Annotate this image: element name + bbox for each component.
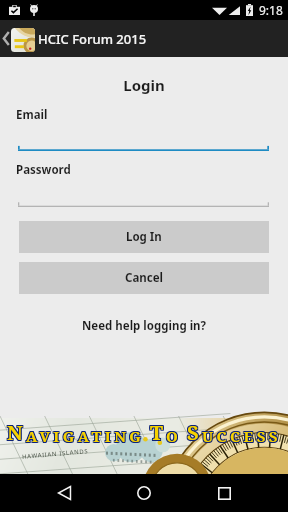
staticText: AVIGATING [26, 427, 145, 447]
staticText: UCCESS [202, 427, 281, 447]
staticText: AVIGATING [26, 425, 145, 445]
staticText: AVIGATING [27, 425, 146, 445]
staticText: AVIGATING [26, 426, 145, 446]
staticText: S [186, 418, 201, 445]
staticText: Login [0, 75, 288, 95]
staticText: N [6, 419, 25, 446]
button[interactable]: Navigate up [0, 20, 12, 57]
staticText: UCCESS [202, 425, 281, 445]
staticText: AVIGATING [27, 427, 146, 447]
staticText: T [150, 418, 166, 445]
staticText: UCCESS [201, 427, 280, 447]
staticText: UCCESS [203, 427, 282, 447]
button[interactable]: Recent apps [202, 474, 246, 512]
staticText: UCCESS [201, 426, 280, 446]
button[interactable]: Log In [19, 221, 269, 253]
button[interactable]: Back [42, 474, 86, 512]
staticText: O [165, 425, 181, 445]
staticText: O [167, 425, 183, 445]
staticText: UCCESS [203, 425, 282, 445]
staticText: N [8, 420, 27, 447]
staticText: O [166, 427, 182, 447]
staticText: Log In [126, 229, 162, 245]
staticText: T [151, 420, 167, 447]
staticText: T [151, 419, 167, 446]
button[interactable]: Cancel [19, 262, 269, 294]
staticText: Need help logging in? [82, 318, 207, 334]
button[interactable]: Need help logging in? [76, 315, 213, 337]
staticText: N [7, 420, 26, 447]
staticText: S [187, 420, 202, 447]
button[interactable]: Home [122, 474, 166, 512]
staticText: T [150, 419, 166, 446]
staticText: S [188, 419, 203, 446]
staticText: Password [16, 162, 71, 178]
staticText: Cancel [125, 270, 163, 286]
staticText: N [6, 420, 25, 447]
staticText: HCIC Forum 2015 [38, 30, 147, 48]
staticText: N [8, 419, 27, 446]
staticText: AVIGATING [25, 426, 144, 446]
staticText: N [7, 418, 26, 445]
staticText: O [166, 426, 182, 446]
staticText: AVIGATING [25, 425, 144, 445]
staticText: S [186, 419, 201, 446]
staticText: UCCESS [201, 425, 280, 445]
staticText: S [186, 420, 201, 447]
staticText: O [165, 427, 181, 447]
staticText: S [187, 419, 202, 446]
staticText: S [188, 418, 203, 445]
staticText: Email [16, 107, 48, 123]
staticText: S [187, 418, 202, 445]
staticText: N [8, 418, 27, 445]
staticText: T [149, 419, 165, 446]
staticText: HAWAIIAN ISLANDS [22, 447, 89, 461]
button[interactable]: Advertisement: Navigating To Success [0, 418, 288, 474]
staticText: UCCESS [202, 426, 281, 446]
staticText: N [7, 419, 26, 446]
staticText: O [167, 427, 183, 447]
staticText: 9:18 [259, 2, 283, 18]
staticText: T [150, 420, 166, 447]
staticText: O [166, 425, 182, 445]
staticText: T [149, 418, 165, 445]
staticText: O [167, 426, 183, 446]
staticText: AVIGATING [27, 426, 146, 446]
staticText: O [165, 426, 181, 446]
staticText: N [6, 418, 25, 445]
staticText: T [151, 418, 167, 445]
staticText: UCCESS [203, 426, 282, 446]
staticText: T [149, 420, 165, 447]
staticText: AVIGATING [25, 427, 144, 447]
staticText: S [188, 420, 203, 447]
